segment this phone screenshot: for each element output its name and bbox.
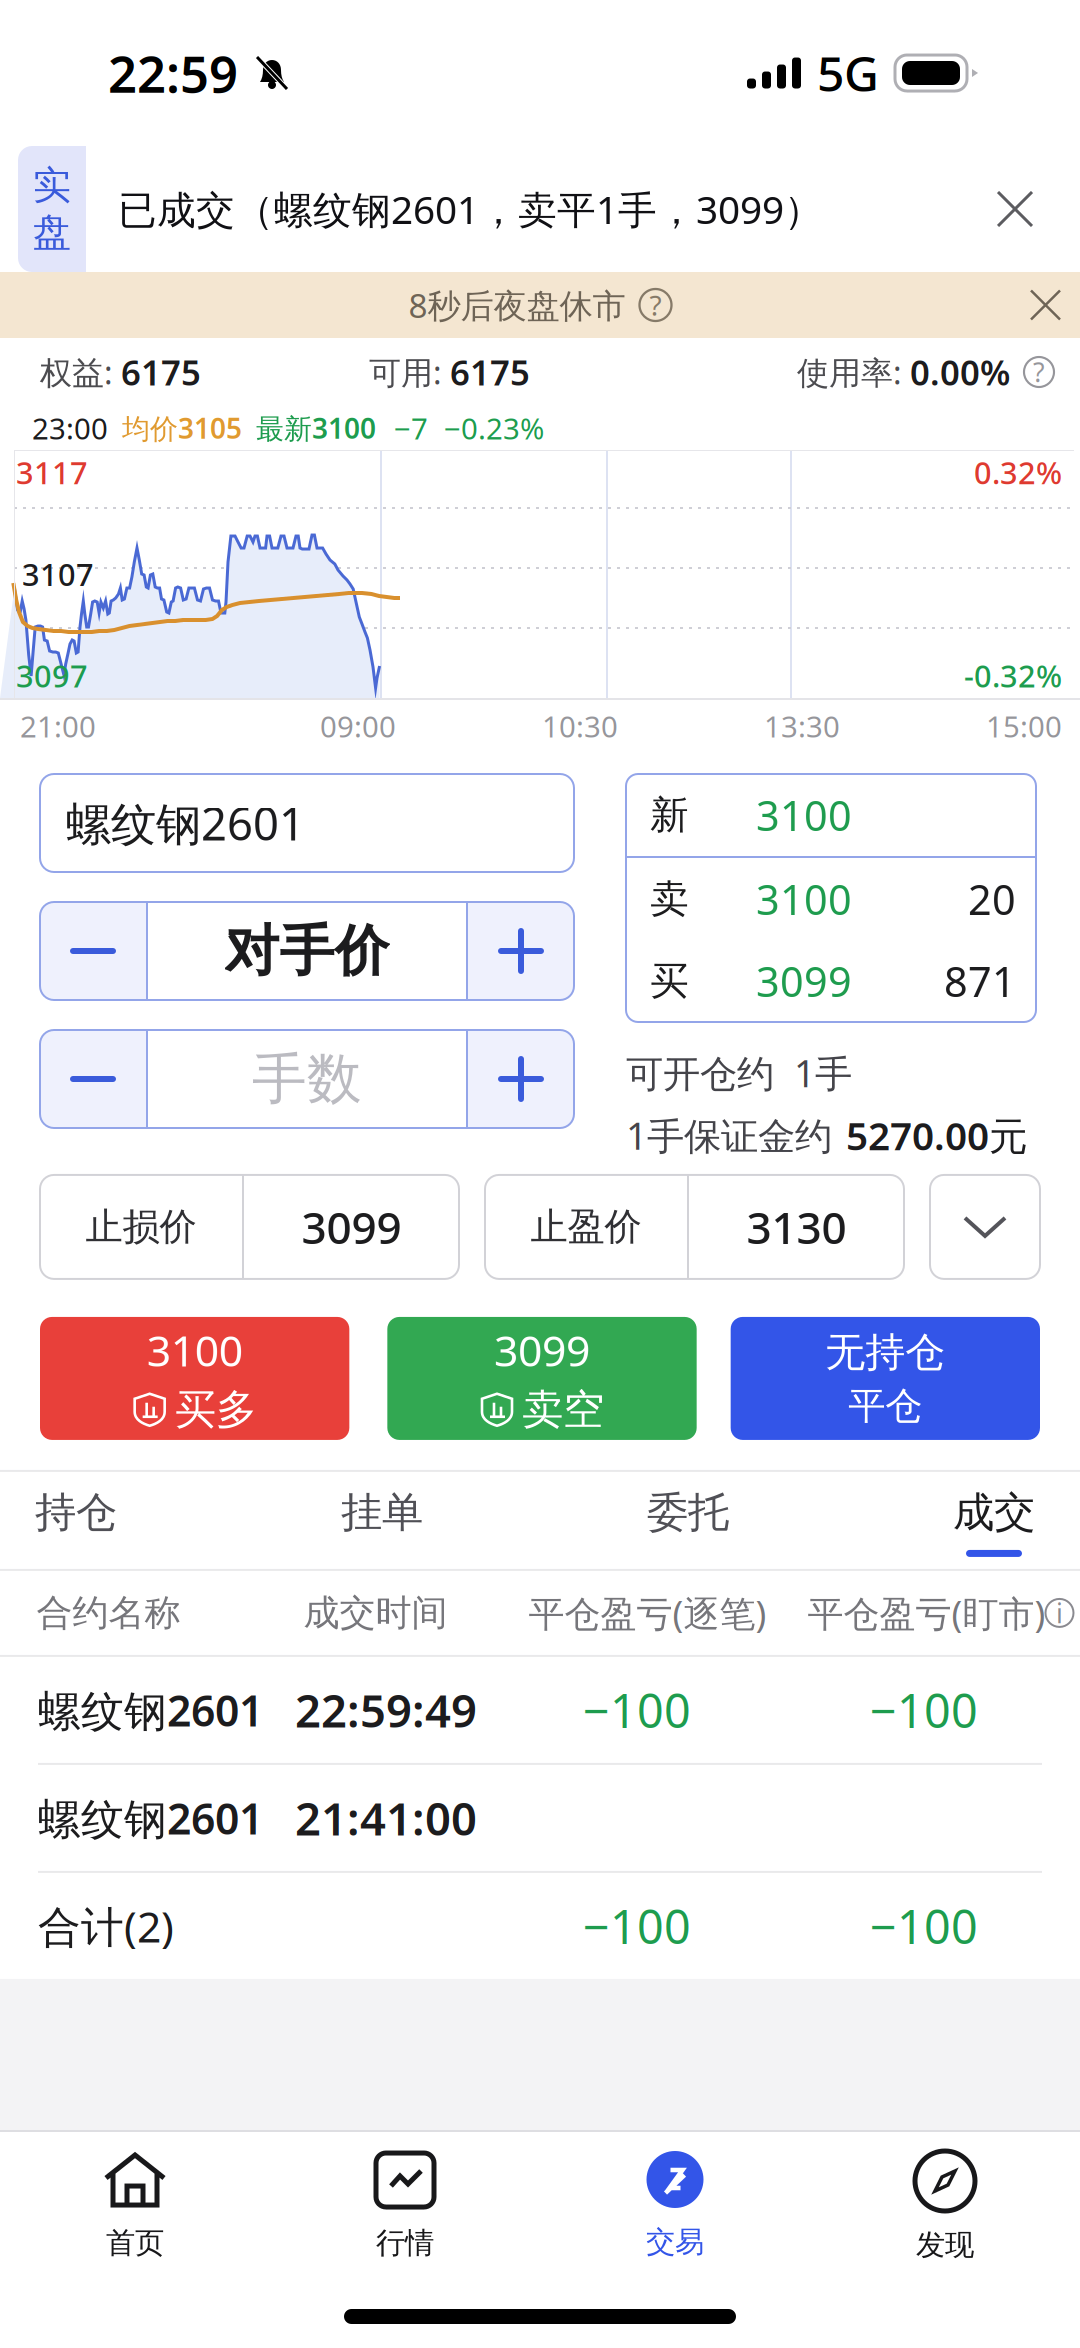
button[interactable]: 无持仓 [731, 1317, 1040, 1440]
staticText: 对手价 [224, 917, 389, 984]
staticText: 平仓 [848, 1383, 922, 1429]
staticText: −7 [394, 408, 428, 447]
staticText: 止盈价 [530, 1204, 641, 1250]
button[interactable]: 3099 [387, 1317, 697, 1440]
staticText: 3097 [16, 655, 88, 696]
staticText: 3099 [756, 954, 852, 1008]
staticText: 使用率: [797, 351, 902, 393]
staticText: 首页 [106, 2225, 164, 2261]
staticText: 止损价 [85, 1204, 196, 1250]
button[interactable]: 交易 [540, 2132, 810, 2284]
staticText: 合计(2) [38, 1898, 174, 1954]
button[interactable]: 螺纹钢2601 [0, 1765, 1080, 1871]
staticText: 持仓 [35, 1487, 117, 1538]
button[interactable]: 螺纹钢2601 [40, 774, 574, 872]
staticText: 1手保证金约 [626, 1110, 832, 1160]
staticText: −100 [583, 1895, 691, 1957]
staticText: 成交时间 [303, 1591, 447, 1635]
staticText: 平仓盈亏(逐笔) [528, 1589, 766, 1637]
staticText: 3099 [301, 1198, 401, 1256]
button[interactable]: 委托 [618, 1472, 758, 1569]
staticText: 交易 [646, 2224, 704, 2260]
button[interactable]: Increase [468, 1030, 574, 1128]
staticText: i [1056, 1595, 1063, 1631]
staticText: 8秒后夜盘休市 [408, 283, 625, 327]
staticText: 委托 [647, 1487, 729, 1538]
button[interactable]: Increase [468, 902, 574, 1000]
staticText: 买 [650, 957, 689, 1005]
button[interactable]: Dismiss notice [1019, 272, 1072, 338]
staticText: −100 [870, 1679, 978, 1741]
button[interactable]: 止盈价 [485, 1175, 904, 1279]
button[interactable]: 发现 [810, 2132, 1080, 2284]
button[interactable]: 实 盘 [0, 146, 1080, 272]
staticText: 6175 [450, 349, 530, 395]
staticText: 均价3105 [122, 409, 242, 447]
staticText: 3100 [147, 1322, 243, 1378]
staticText: 3130 [746, 1198, 846, 1256]
staticText: 无持仓 [825, 1328, 945, 1377]
staticText: 3117 [16, 452, 88, 493]
staticText: 可用: [369, 351, 442, 393]
staticText: 新 [650, 791, 689, 839]
button[interactable]: 首页 [0, 2132, 270, 2284]
staticText: 21:00 [20, 706, 96, 745]
staticText: 22:59 [108, 39, 238, 107]
staticText: 3099 [494, 1322, 590, 1378]
button[interactable]: 成交 [924, 1472, 1064, 1569]
staticText: ? [649, 286, 661, 324]
staticText: 21:41:00 [295, 1788, 477, 1848]
staticText: 可开仓约 1手 [626, 1048, 852, 1098]
staticText: 平仓盈亏(盯市) [807, 1589, 1045, 1637]
staticText: ? [1033, 354, 1045, 390]
staticText: 发现 [916, 2227, 974, 2263]
button[interactable]: Decrease [40, 902, 146, 1000]
staticText: 6175 [121, 349, 201, 395]
button[interactable]: More order options [930, 1175, 1040, 1279]
staticText: 卖 [650, 875, 689, 923]
button[interactable]: Decrease [40, 1030, 146, 1128]
staticText: 15:00 [986, 706, 1062, 745]
staticText: 3100 [756, 872, 852, 926]
button[interactable]: 3100 [40, 1317, 349, 1440]
staticText: 成交 [953, 1487, 1035, 1538]
staticText: 0.32% [974, 452, 1062, 493]
staticText: 合约名称 [36, 1591, 180, 1635]
staticText: 最新3100 [256, 409, 376, 447]
staticText: 10:30 [542, 706, 618, 745]
staticText: 23:00 [32, 408, 108, 447]
staticText: 13:30 [764, 706, 840, 745]
staticText: 已成交（螺纹钢2601，卖平1手，3099） [118, 183, 823, 235]
staticText: 3107 [22, 554, 94, 594]
staticText: 手数 [252, 1045, 362, 1112]
staticText: 行情 [376, 2225, 434, 2261]
staticText: 3100 [756, 788, 852, 842]
staticText: 螺纹钢2601 [66, 793, 305, 853]
staticText: 871 [944, 954, 1016, 1008]
staticText: 卖空 [522, 1384, 604, 1435]
button[interactable]: 挂单 [312, 1472, 452, 1569]
staticText: 5270.00元 [846, 1110, 1028, 1161]
button[interactable]: 止损价 [40, 1175, 459, 1279]
staticText: 买多 [175, 1384, 257, 1435]
staticText: 22:59:49 [295, 1680, 477, 1740]
staticText: 5G [817, 41, 879, 105]
staticText: 09:00 [320, 706, 396, 745]
staticText: -0.32% [964, 655, 1062, 696]
staticText: −100 [583, 1679, 691, 1741]
staticText: 实 盘 [32, 161, 71, 256]
button[interactable]: 持仓 [6, 1472, 146, 1569]
staticText: 螺纹钢2601 [38, 1682, 263, 1738]
staticText: −0.23% [444, 408, 544, 447]
button[interactable]: 合计(2) [0, 1873, 1080, 1979]
button[interactable]: 行情 [270, 2132, 540, 2284]
staticText: 权益: [40, 351, 113, 393]
staticText: 20 [968, 872, 1016, 926]
button[interactable]: 螺纹钢2601 [0, 1657, 1080, 1763]
staticText: 螺纹钢2601 [38, 1790, 263, 1846]
staticText: −100 [870, 1895, 978, 1957]
staticText: 0.00% [910, 349, 1010, 395]
staticText: 挂单 [341, 1487, 423, 1538]
